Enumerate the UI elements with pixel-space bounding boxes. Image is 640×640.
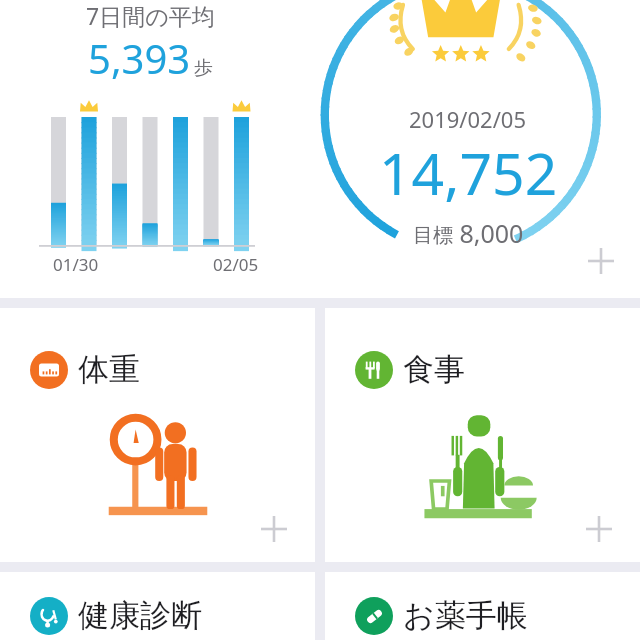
button[interactable]: Add [582,512,616,546]
staticText: 8,000 [453,216,524,250]
staticText: 14,752 [379,134,558,212]
staticText: 01/30 [53,253,99,276]
staticText: 歩 [194,56,213,80]
staticText: 2019/02/05 [409,104,527,134]
staticText: 目標 [413,223,453,248]
staticText: お薬手帳 [403,596,528,635]
button[interactable]: 7日間の平均 [0,0,640,298]
staticText: 健康診断 [78,596,202,635]
button[interactable]: 体重 [0,308,315,562]
button[interactable]: 健康診断 [0,572,315,640]
staticText: 02/05 [213,253,259,276]
button[interactable]: Add [257,512,291,546]
button[interactable]: Add [584,244,618,278]
staticText: 体重 [78,350,140,389]
button[interactable]: 食事 [325,308,640,562]
button[interactable]: お薬手帳 [325,572,640,640]
staticText: 7日間の平均 [86,0,215,31]
staticText: 食事 [403,350,465,389]
staticText: 5,393 [88,31,191,85]
